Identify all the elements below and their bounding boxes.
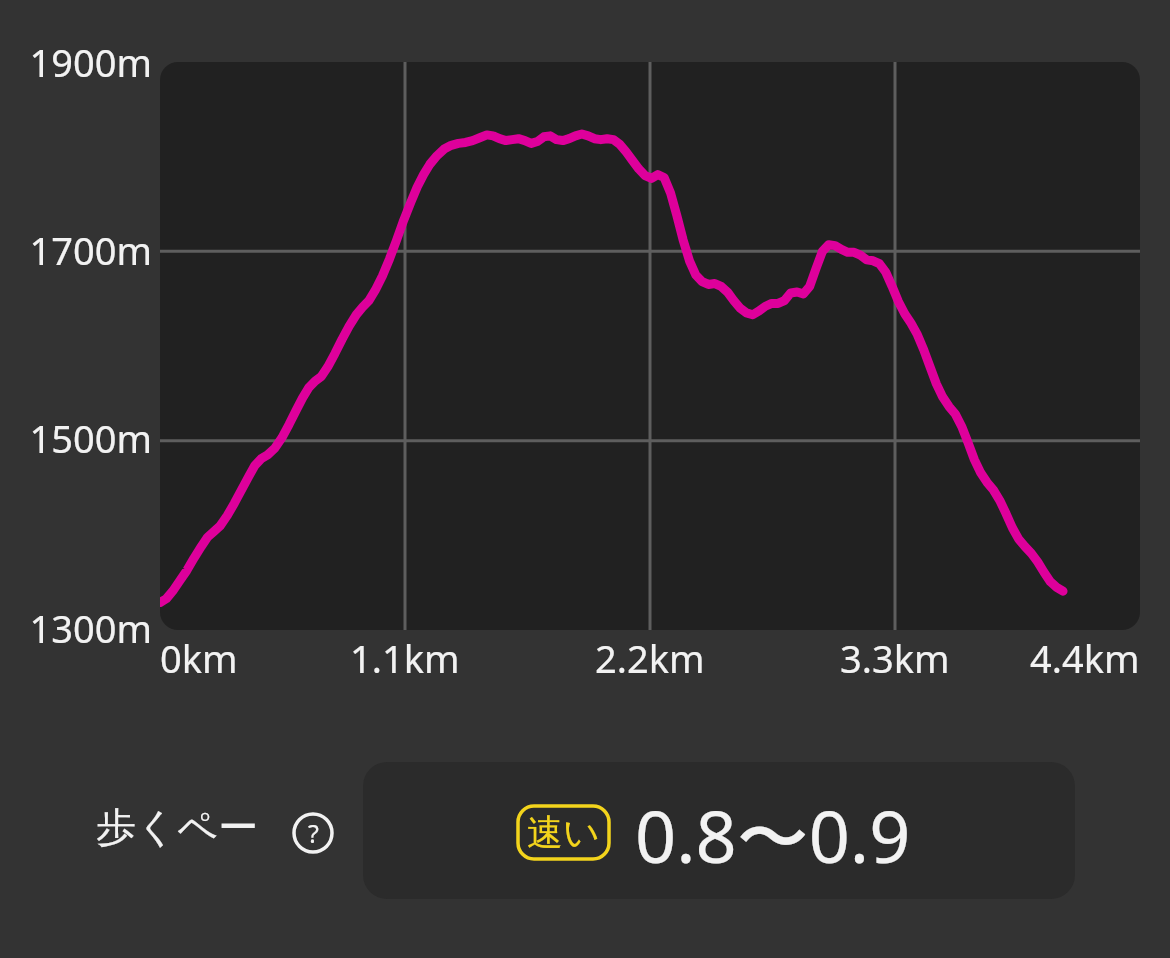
staticText: 0.8〜0.9 xyxy=(635,786,911,884)
staticText: 2.2km xyxy=(595,632,705,682)
button[interactable]: 歩くペース xyxy=(96,802,286,860)
staticText: 歩くペース xyxy=(96,802,286,860)
button[interactable]: ヘルプ xyxy=(292,812,334,854)
staticText: 1500m xyxy=(29,412,152,464)
staticText: 1.1km xyxy=(350,632,460,682)
staticText: 0km xyxy=(160,632,238,682)
staticText: 4.4km xyxy=(1030,632,1140,682)
staticText: 速い xyxy=(527,810,600,855)
staticText: 1900m xyxy=(29,36,152,88)
staticText: 1300m xyxy=(29,602,152,654)
staticText: ? xyxy=(308,816,319,850)
staticText: 3.3km xyxy=(840,632,950,682)
staticText: 1700m xyxy=(29,224,152,276)
button[interactable]: 速い xyxy=(363,762,1075,899)
